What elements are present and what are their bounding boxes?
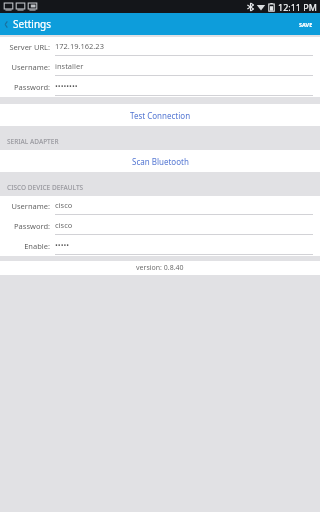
button[interactable]: Password: (0, 77, 320, 97)
staticText: 172.19.162.23 (55, 41, 104, 51)
staticText: SERIAL ADAPTER (7, 137, 59, 146)
button[interactable]: Enable: (0, 236, 320, 256)
staticText: cisco (55, 220, 73, 230)
staticText: SAVE (299, 21, 313, 28)
button[interactable]: Scan Bluetooth (0, 150, 320, 172)
staticText: cisco (55, 200, 73, 210)
staticText: Username: (0, 62, 50, 72)
staticText: version: 0.8.40 (136, 263, 184, 273)
staticText: 12:11 PM (278, 1, 317, 13)
button[interactable]: Username: (0, 57, 320, 77)
staticText: •••••••• (55, 81, 78, 91)
staticText: Password: (0, 221, 50, 231)
button[interactable]: Password: (0, 216, 320, 236)
button[interactable]: Test Connection (0, 104, 320, 126)
staticText: Settings (13, 17, 52, 31)
other: Back (3, 19, 10, 30)
staticText: Username: (0, 201, 50, 211)
button[interactable]: Back (0, 17, 58, 31)
staticText: ••••• (55, 240, 70, 250)
staticText: Password: (0, 82, 50, 92)
staticText: Scan Bluetooth (132, 156, 189, 167)
staticText: installer (55, 61, 84, 71)
button[interactable]: Username: (0, 196, 320, 216)
staticText: Server URL: (0, 42, 50, 52)
staticText: CISCO DEVICE DEFAULTS (7, 183, 84, 192)
button[interactable]: Server URL: (0, 37, 320, 57)
staticText: Test Connection (130, 110, 191, 121)
button[interactable]: SAVE (292, 17, 320, 32)
staticText: Enable: (0, 241, 50, 251)
